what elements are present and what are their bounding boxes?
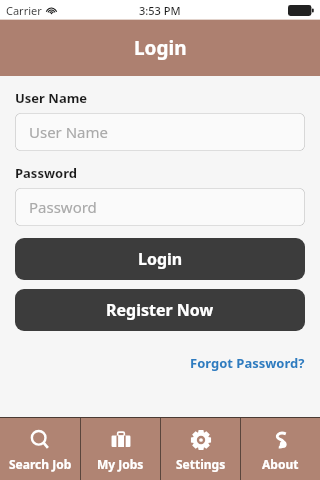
staticText: Password [29,197,97,217]
other: Search Job [29,429,51,451]
button[interactable]: Login [15,238,305,280]
staticText: User Name [15,89,88,107]
staticText: Settings [176,456,226,472]
staticText: Login [138,248,183,270]
button[interactable]: Settings [161,418,240,480]
button[interactable]: User Name [15,113,305,151]
staticText: Register Now [106,299,214,321]
staticText: Carrier [6,3,42,18]
button[interactable]: Forgot Password? [182,351,320,375]
staticText: Login [134,35,187,61]
staticText: About [262,456,299,472]
staticText: Password [15,164,77,182]
other: My Jobs [110,429,132,451]
button[interactable]: Search Job [0,418,80,480]
button[interactable]: Register Now [15,289,305,331]
button[interactable]: Password [15,188,305,226]
other: About [270,429,292,451]
staticText: 3:53 PM [139,3,181,18]
button[interactable]: My Jobs [81,418,160,480]
staticText: My Jobs [97,456,144,472]
button[interactable]: About [241,418,320,480]
other: Settings [190,429,212,451]
staticText: Search Job [9,456,72,472]
staticText: User Name [29,122,109,142]
